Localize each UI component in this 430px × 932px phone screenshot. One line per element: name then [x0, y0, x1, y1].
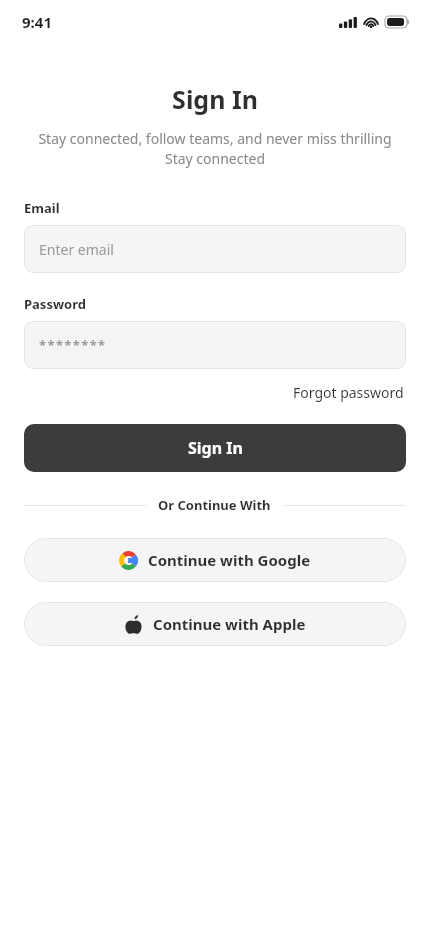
button[interactable]: Sign In — [24, 424, 406, 472]
staticText: Password — [24, 295, 406, 313]
button[interactable]: Forgot password — [291, 381, 406, 404]
staticText: Forgot password — [293, 383, 404, 402]
staticText: ******** — [39, 336, 107, 354]
button[interactable]: Continue with Apple — [24, 602, 406, 646]
button[interactable]: ******** — [24, 321, 406, 369]
staticText: Continue with Google — [148, 550, 311, 570]
staticText: Email — [24, 199, 406, 217]
staticText: Continue with Apple — [153, 614, 306, 634]
button[interactable]: Enter email — [24, 225, 406, 273]
staticText: Sign In — [0, 82, 430, 116]
staticText: Stay connected, follow teams, and never … — [34, 129, 396, 169]
staticText: Enter email — [39, 240, 114, 259]
staticText: 9:41 — [22, 12, 52, 32]
staticText: Sign In — [188, 437, 243, 459]
button[interactable]: Continue with Google — [24, 538, 406, 582]
staticText: Or Continue With — [158, 496, 271, 514]
